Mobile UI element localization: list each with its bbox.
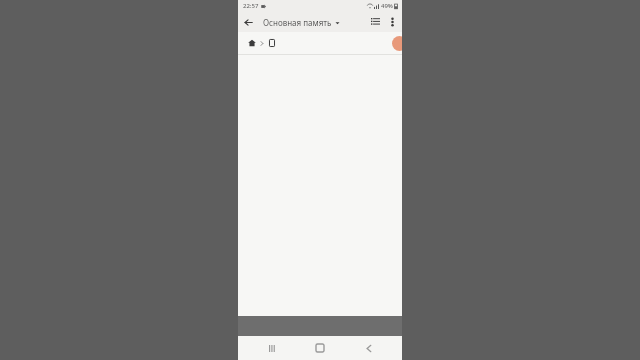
staticText: 49% — [381, 2, 393, 10]
button[interactable]: Internal storage — [266, 37, 278, 49]
button[interactable]: Home — [305, 337, 335, 359]
staticText: 22:57 — [243, 2, 259, 10]
button[interactable]: Recent apps — [257, 337, 287, 359]
staticText: Основная память — [263, 17, 332, 28]
button[interactable]: View mode — [366, 13, 384, 31]
button[interactable]: Back — [238, 12, 258, 32]
button[interactable]: Основная память — [262, 14, 341, 31]
button[interactable]: Back — [354, 337, 384, 359]
button[interactable]: Home — [246, 37, 258, 49]
button[interactable]: More options — [384, 14, 400, 30]
